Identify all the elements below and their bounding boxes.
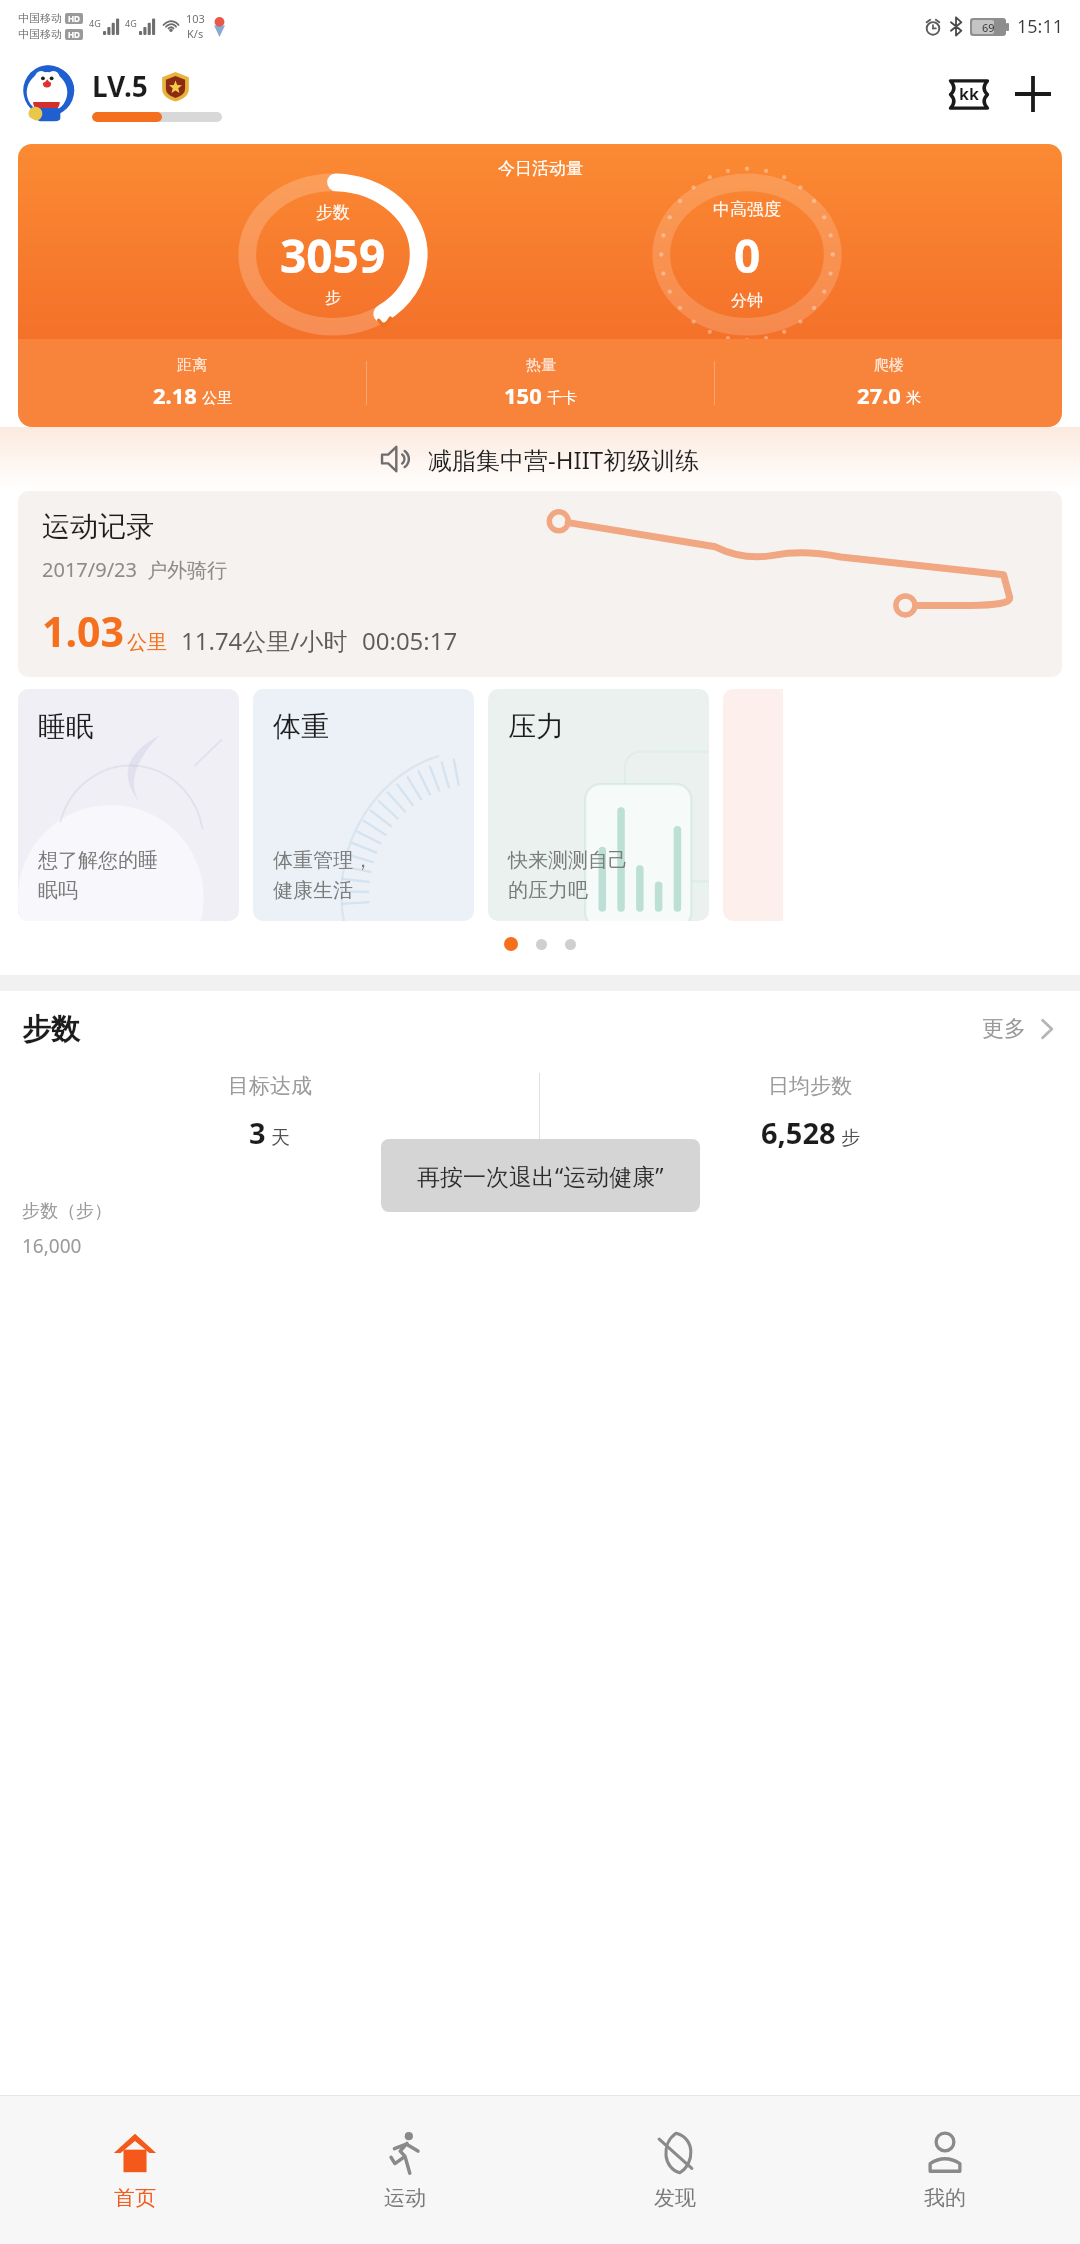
staticText: 热量 <box>526 356 556 375</box>
staticText: 3 <box>249 1113 266 1152</box>
staticText: 步 <box>841 1126 860 1150</box>
staticText: 爬楼 <box>874 356 904 375</box>
staticText: 目标达成 <box>228 1073 312 1099</box>
staticText: 健康生活 <box>273 878 353 903</box>
staticText: 16,000 <box>22 1233 82 1259</box>
staticText: 米 <box>906 389 921 408</box>
staticText: 中国移动 <box>18 11 62 25</box>
button[interactable]: Profile <box>18 65 76 123</box>
staticText: 步数（步） <box>22 1200 112 1223</box>
button[interactable]: LV.5 <box>92 67 222 122</box>
staticText: 体重管理， <box>273 848 373 873</box>
button[interactable]: 运动 <box>270 2096 540 2244</box>
button[interactable]: Add <box>1004 65 1062 123</box>
staticText: 00:05:17 <box>362 624 458 657</box>
staticText: 运动记录 <box>42 509 154 544</box>
staticText: 2.18 <box>153 380 197 410</box>
staticText: 中国移动 <box>18 27 62 41</box>
staticText: 0 <box>734 224 761 287</box>
staticText: 天 <box>271 1126 290 1150</box>
button[interactable]: 减脂集中营-HIIT初级训练 <box>0 427 1080 491</box>
staticText: 运动 <box>384 2185 426 2211</box>
staticText: 千卡 <box>547 389 577 408</box>
button[interactable]: 压力 <box>488 689 709 921</box>
staticText: 体重 <box>273 709 329 744</box>
staticText: HD <box>68 13 80 24</box>
staticText: 3059 <box>280 224 386 287</box>
staticText: 中高强度 <box>713 199 781 220</box>
staticText: 1.03 <box>42 603 124 659</box>
staticText: 2017/9/23 户外骑行 <box>42 556 228 583</box>
staticText: 再按一次退出“运动健康” <box>417 1160 664 1191</box>
staticText: 4G <box>125 17 137 29</box>
staticText: 距离 <box>177 356 207 375</box>
button[interactable]: 步数 <box>22 991 1058 1067</box>
staticText: 眠吗 <box>38 878 78 903</box>
staticText: 步数 <box>22 1011 80 1048</box>
staticText: 69 <box>982 20 995 34</box>
button[interactable]: Coupons <box>940 65 998 123</box>
staticText: 公里 <box>127 630 167 655</box>
button[interactable]: 睡眠 <box>18 689 239 921</box>
staticText: K/s <box>187 26 204 41</box>
staticText: 分钟 <box>731 291 763 311</box>
staticText: 6,528 <box>761 1113 836 1152</box>
staticText: 4G <box>89 17 101 29</box>
staticText: kk <box>959 83 979 105</box>
staticText: 首页 <box>114 2185 156 2211</box>
staticText: 步数 <box>316 202 350 223</box>
staticText: 15:11 <box>1017 14 1064 39</box>
staticText: 发现 <box>654 2185 696 2211</box>
staticText: 睡眠 <box>38 709 94 744</box>
staticText: 150 <box>504 380 542 410</box>
staticText: 的压力吧 <box>508 878 588 903</box>
staticText: 步 <box>325 288 341 308</box>
staticText: 27.0 <box>857 380 901 410</box>
staticText: 更多 <box>982 1015 1026 1043</box>
staticText: 我的 <box>924 2185 966 2211</box>
staticText: 日均步数 <box>768 1073 852 1099</box>
staticText: HD <box>68 29 80 40</box>
button[interactable]: 发现 <box>540 2096 810 2244</box>
button[interactable]: 我的 <box>810 2096 1080 2244</box>
staticText: 想了解您的睡 <box>38 848 158 873</box>
staticText: 压力 <box>508 709 564 744</box>
staticText: 快来测测自己 <box>508 848 628 873</box>
staticText: LV.5 <box>92 67 148 105</box>
button[interactable]: 今日活动量 <box>18 144 1062 427</box>
staticText: 11.74公里/小时 <box>181 624 348 657</box>
button[interactable]: 运动记录 <box>18 491 1062 677</box>
button[interactable]: 首页 <box>0 2096 270 2244</box>
staticText: 今日活动量 <box>498 158 583 179</box>
staticText: 公里 <box>202 389 232 408</box>
staticText: 103 <box>186 11 205 26</box>
staticText: 减脂集中营-HIIT初级训练 <box>428 443 700 476</box>
button[interactable]: 体重 <box>253 689 474 921</box>
